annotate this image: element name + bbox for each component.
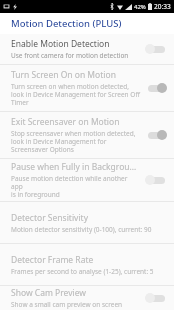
staticText: Turn screen on when motion detected, loo… <box>11 82 140 107</box>
staticText: Pause motion detection while another app… <box>11 174 140 199</box>
staticText: Motion detector sensitivity (0-100), cur… <box>11 225 152 234</box>
staticText: Motion Detection (PLUS) <box>11 17 122 30</box>
button[interactable]: Enable Motion Detection <box>0 34 174 64</box>
button[interactable]: Detector Sensitivity <box>0 202 174 243</box>
staticText: Pause when Fully in Background (ex.. <box>11 161 140 173</box>
staticText: Show a small cam preview on screen <box>11 300 123 309</box>
staticText: 42% <box>134 3 146 11</box>
staticText: Stop screensaver when motion detected, l… <box>11 129 136 154</box>
button[interactable]: Toggle off <box>144 173 168 187</box>
button[interactable]: Pause when Fully in Background (ex.. <box>0 159 174 201</box>
staticText: Exit Screensaver on Motion <box>11 116 120 128</box>
staticText: Detector Frame Rate <box>11 254 94 266</box>
staticText: Show Cam Preview <box>11 287 87 299</box>
staticText: Detector Sensitivity <box>11 212 89 224</box>
staticText: Use front camera for motion detection <box>11 51 129 60</box>
staticText: 20:33 <box>154 2 171 11</box>
button[interactable]: Exit Screensaver on Motion <box>0 112 174 158</box>
button[interactable]: Toggle off <box>144 42 168 56</box>
button[interactable]: Toggle off <box>144 291 168 305</box>
button[interactable]: Toggle on <box>144 81 168 95</box>
staticText: Turn Screen On on Motion <box>11 69 116 81</box>
staticText: Frames per second to analyse (1-25), cur… <box>11 267 154 276</box>
button[interactable]: Turn Screen On on Motion <box>0 65 174 111</box>
button[interactable]: Detector Frame Rate <box>0 244 174 285</box>
button[interactable]: Toggle on <box>144 128 168 142</box>
staticText: Enable Motion Detection <box>11 38 110 50</box>
button[interactable]: Show Cam Preview <box>0 286 174 310</box>
